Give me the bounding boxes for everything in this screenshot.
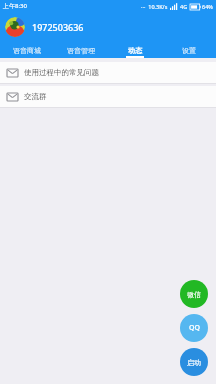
button[interactable]: 1972503636 bbox=[0, 12, 216, 42]
staticText: 1972503636 bbox=[32, 21, 84, 33]
staticText: 上午8:30 bbox=[3, 2, 27, 10]
button[interactable]: 微信 bbox=[180, 280, 208, 308]
staticText: 使用过程中的常见问题 bbox=[24, 68, 99, 77]
staticText: 设置 bbox=[182, 46, 196, 55]
staticText: 4G bbox=[180, 3, 188, 10]
button[interactable]: 交流群 bbox=[0, 86, 216, 107]
staticText: 启动 bbox=[187, 358, 201, 367]
staticText: 语音商城 bbox=[13, 46, 41, 55]
button[interactable]: QQ bbox=[180, 314, 208, 342]
button[interactable]: 设置 bbox=[162, 42, 216, 58]
staticText: 交流群 bbox=[24, 92, 47, 101]
button[interactable]: 使用过程中的常见问题 bbox=[0, 62, 216, 83]
button[interactable]: 启动 bbox=[180, 348, 208, 376]
button[interactable]: 语音商城 bbox=[0, 42, 54, 58]
staticText: 语音管理 bbox=[67, 46, 95, 55]
button[interactable]: 语音管理 bbox=[54, 42, 108, 58]
staticText: QQ bbox=[189, 323, 200, 333]
staticText: 微信 bbox=[187, 290, 201, 299]
staticText: 64% bbox=[202, 3, 213, 10]
staticText: ··· 10.3K/s bbox=[141, 3, 168, 10]
button[interactable]: 动态 bbox=[108, 42, 162, 58]
staticText: 动态 bbox=[128, 46, 142, 55]
